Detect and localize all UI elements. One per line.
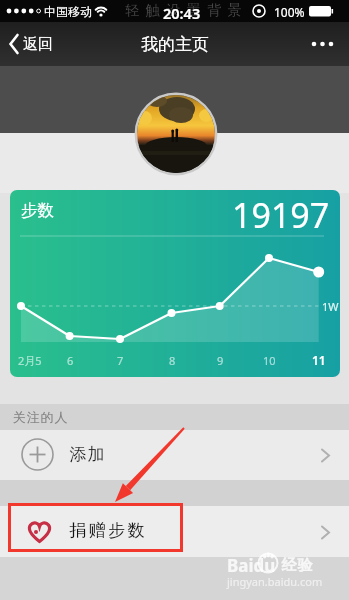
staticText: 9 [217, 353, 224, 368]
staticText: 添加 [69, 444, 105, 465]
staticText: 20:43 [163, 3, 201, 23]
button[interactable]: 返回 [0, 26, 80, 62]
staticText: jingyan.baidu.com [227, 574, 323, 589]
staticText: 7 [117, 353, 124, 368]
staticText: 100% [274, 4, 305, 20]
staticText: 10 [263, 353, 276, 368]
staticText: 我的主页 [141, 34, 209, 55]
staticText: 8 [169, 353, 176, 368]
staticText: 19197 [232, 192, 330, 238]
staticText: 中国移动 [44, 4, 92, 19]
staticText: 捐赠步数 [68, 520, 146, 541]
staticText: 关注的人 [12, 409, 68, 425]
button[interactable]: 捐赠步数 [0, 506, 349, 557]
button[interactable]: 步数 [10, 190, 340, 377]
staticText: 2月5 [18, 353, 42, 368]
button[interactable]: 添加 [0, 430, 349, 480]
staticText: 步数 [21, 200, 54, 221]
staticText: 11 [312, 352, 326, 368]
button[interactable] [300, 26, 344, 62]
staticText: 6 [67, 353, 74, 368]
staticText: 经验 [281, 556, 313, 575]
staticText: Baidu [227, 554, 276, 577]
staticText: 1W [322, 299, 339, 314]
staticText: 返回 [23, 35, 53, 54]
staticText: 轻触设置背景 [122, 2, 245, 20]
